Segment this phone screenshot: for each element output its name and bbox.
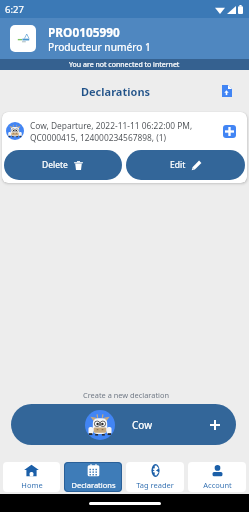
button[interactable]: Export declarations [216, 80, 238, 102]
staticText: QC0000415, 124000234567898, (1) [30, 132, 167, 143]
button[interactable]: Tag reader [126, 462, 184, 492]
staticText: Create a new declaration [83, 390, 170, 400]
staticText: Edit [170, 159, 186, 171]
staticText: Declarations [71, 480, 116, 490]
staticText: Cow, Departure, 2022-11-11 06:22:00 PM, [30, 120, 193, 131]
button[interactable]: Account [188, 462, 246, 492]
staticText: You are not connected to internet [69, 60, 180, 70]
button[interactable]: Home [3, 462, 60, 492]
staticText: Tag reader [136, 480, 174, 490]
staticText: PRO0105990 [48, 24, 120, 40]
staticText: Delete [42, 159, 68, 171]
staticText: Cow [132, 418, 153, 432]
button[interactable]: Edit [126, 150, 245, 180]
button[interactable]: Add declaration [223, 125, 236, 138]
staticText: 6:27 [5, 3, 24, 16]
button[interactable]: Cow [11, 404, 236, 445]
button[interactable]: Delete [4, 150, 122, 180]
staticText: Home [21, 480, 43, 490]
staticText: Producteur numéro 1 [48, 40, 151, 54]
staticText: Declarations [81, 84, 151, 99]
button[interactable]: Declarations [64, 462, 122, 492]
staticText: Account [203, 480, 232, 490]
